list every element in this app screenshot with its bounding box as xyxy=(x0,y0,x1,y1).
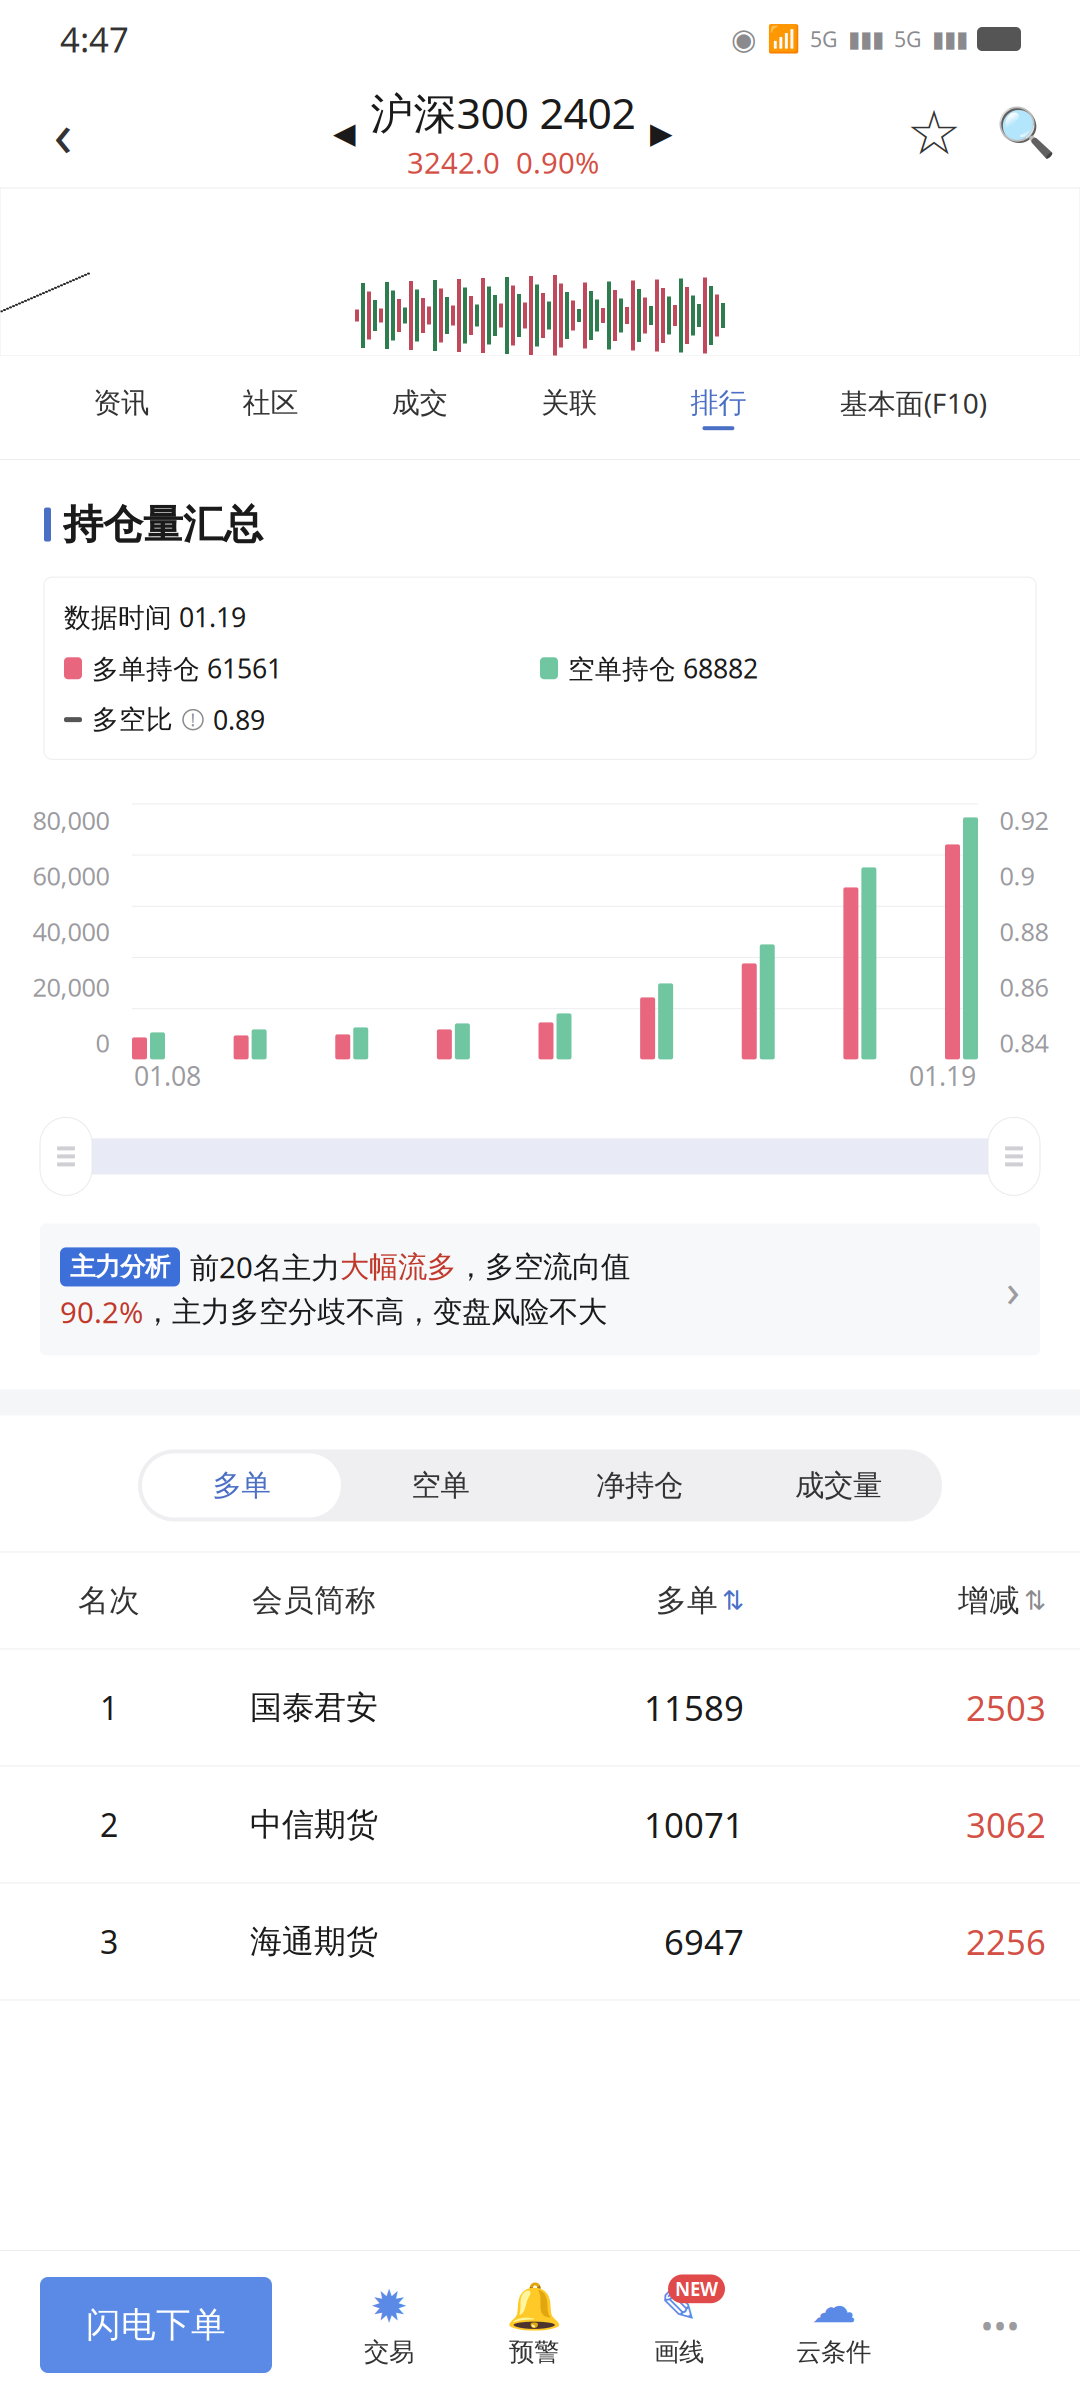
staticText: 0.89 xyxy=(213,702,265,737)
button[interactable]: Add to favourites xyxy=(888,85,980,181)
staticText: 0.88 xyxy=(999,914,1048,948)
staticText: 基本面(F10) xyxy=(840,384,987,422)
button[interactable]: 2 xyxy=(0,1766,1080,1883)
staticText: 画线 xyxy=(654,2336,704,2367)
staticText: ✹ xyxy=(370,2281,408,2332)
staticText: 多空比 xyxy=(92,703,173,736)
staticText: 中信期货 xyxy=(250,1805,378,1844)
staticText: 主力分析 xyxy=(70,1251,170,1282)
button[interactable]: 主力分析 xyxy=(40,1223,1040,1355)
staticText: 0.9 xyxy=(999,859,1034,893)
staticText: 成交 xyxy=(392,386,448,420)
staticText: 数据时间 01.19 xyxy=(64,599,246,634)
button[interactable]: 净持仓 xyxy=(540,1453,739,1517)
staticText: ▮▮▮ xyxy=(848,26,884,52)
staticText: 0 xyxy=(95,1026,109,1059)
staticText: 🔔 xyxy=(506,2280,562,2332)
button[interactable]: 1 xyxy=(0,1649,1080,1766)
staticText: ☆ xyxy=(906,98,961,168)
staticText: 80,000 xyxy=(32,803,109,837)
staticText: 40,000 xyxy=(32,914,109,948)
staticText: 云条件 xyxy=(796,2336,871,2367)
staticText: 增减 xyxy=(958,1582,1020,1619)
staticText: 2256 xyxy=(966,1918,1046,1964)
staticText: 关联 xyxy=(541,386,597,420)
staticText: 沪深300 2402 xyxy=(370,84,635,141)
staticText: ，主力多空分歧不高，变盘风险不大 xyxy=(143,1294,607,1330)
button[interactable]: More xyxy=(960,2277,1040,2373)
staticText: 20,000 xyxy=(32,970,109,1004)
staticText: 90.2% xyxy=(60,1292,143,1331)
staticText: 大幅流多 xyxy=(340,1249,456,1285)
staticText: 成交量 xyxy=(795,1467,882,1503)
staticText: 2 xyxy=(100,1803,118,1846)
staticText: ! xyxy=(190,708,195,731)
staticText: 2503 xyxy=(966,1684,1046,1730)
staticText: 资讯 xyxy=(93,386,149,420)
staticText: ••• xyxy=(980,2302,1019,2348)
staticText: 前20名主力 xyxy=(190,1247,340,1286)
staticText: 空单持仓 68882 xyxy=(568,650,758,686)
button[interactable]: 闪电下单 xyxy=(40,2277,272,2373)
staticText: 01.19 xyxy=(909,1058,976,1093)
button[interactable]: 基本面(F10) xyxy=(840,374,987,442)
button[interactable]: ✎ xyxy=(651,2282,707,2367)
staticText: › xyxy=(1006,1259,1020,1319)
staticText: 多单 xyxy=(656,1582,718,1619)
button[interactable]: 社区 xyxy=(243,376,299,440)
button[interactable]: 多单 xyxy=(142,1453,341,1517)
button[interactable]: Previous contract xyxy=(318,85,370,181)
button[interactable]: Search xyxy=(980,85,1072,181)
staticText: 预警 xyxy=(509,2336,559,2367)
staticText: 会员简称 xyxy=(252,1582,376,1619)
button[interactable]: Back xyxy=(8,85,118,181)
staticText: 0.86 xyxy=(999,970,1048,1004)
staticText: 0.92 xyxy=(999,803,1048,837)
button[interactable]: Next contract xyxy=(635,85,687,181)
staticText: 交易 xyxy=(364,2336,414,2367)
staticText: 01.08 xyxy=(134,1058,201,1093)
staticText: 5G xyxy=(810,25,838,53)
button[interactable]: ✹ xyxy=(361,2282,417,2367)
button[interactable]: 资讯 xyxy=(93,376,149,440)
staticText: ⇅ xyxy=(722,1585,744,1616)
button[interactable]: 成交量 xyxy=(739,1453,938,1517)
staticText: 多单持仓 61561 xyxy=(92,650,282,686)
staticText: 空单 xyxy=(411,1467,469,1503)
button[interactable]: 🔔 xyxy=(506,2282,562,2367)
staticText: 5G xyxy=(894,25,922,53)
staticText: 持仓量汇总 xyxy=(63,500,263,549)
staticText: 1 xyxy=(100,1686,118,1729)
staticText: ☁ xyxy=(811,2281,856,2332)
staticText: 社区 xyxy=(243,386,299,420)
staticText: 多单 xyxy=(212,1467,270,1503)
button[interactable]: 成交 xyxy=(392,376,448,440)
staticText: 净持仓 xyxy=(596,1467,683,1503)
staticText: ◀ xyxy=(333,116,356,150)
button[interactable]: 排行 xyxy=(690,376,746,440)
staticText: 60,000 xyxy=(32,859,109,893)
staticText: ‹ xyxy=(53,92,72,174)
button[interactable]: 关联 xyxy=(541,376,597,440)
staticText: 3062 xyxy=(966,1801,1046,1847)
staticText: ▶ xyxy=(650,116,673,150)
staticText: 📶 xyxy=(767,24,800,54)
button[interactable]: 空单 xyxy=(341,1453,540,1517)
staticText: ◉ xyxy=(731,22,757,56)
staticText: 🔍 xyxy=(996,106,1056,160)
staticText: ⇅ xyxy=(1024,1585,1046,1616)
staticText: 11589 xyxy=(644,1684,744,1730)
staticText: ▮▮▮ xyxy=(932,26,968,52)
staticText: ，多空流向值 xyxy=(456,1249,630,1285)
staticText: 闪电下单 xyxy=(86,2304,226,2346)
button[interactable]: 3 xyxy=(0,1883,1080,2000)
button[interactable]: ☁ xyxy=(796,2282,871,2367)
staticText: 国泰君安 xyxy=(250,1688,378,1727)
staticText: 4:47 xyxy=(60,16,129,62)
staticText: 3 xyxy=(100,1920,118,1963)
staticText: 名次 xyxy=(78,1582,140,1619)
staticText: NEW xyxy=(675,2276,718,2301)
staticText: 排行 xyxy=(690,386,746,420)
staticText: 0.84 xyxy=(999,1026,1048,1059)
staticText: 海通期货 xyxy=(250,1922,378,1961)
